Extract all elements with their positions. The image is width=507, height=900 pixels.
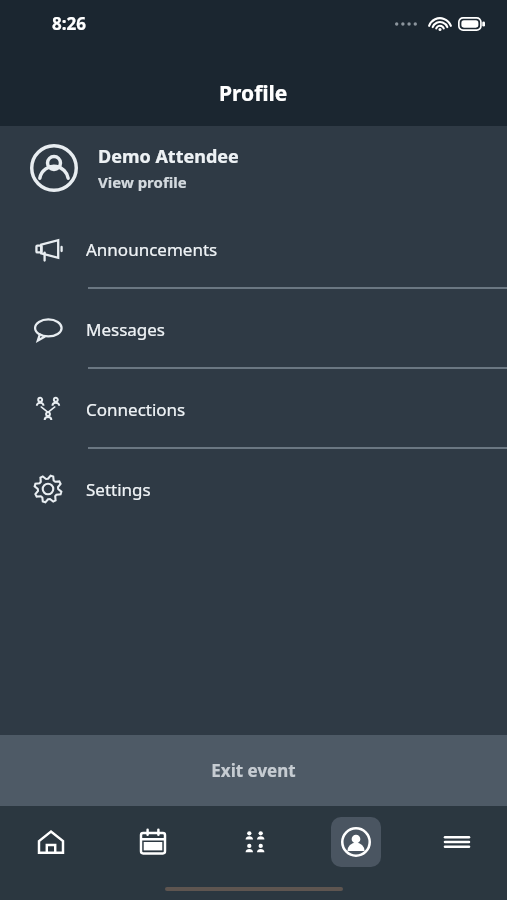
button[interactable]: Settings xyxy=(0,449,507,529)
staticText: Connections xyxy=(86,398,186,421)
button[interactable]: Profile xyxy=(305,806,406,878)
staticText: View profile xyxy=(98,172,187,192)
button[interactable]: People xyxy=(204,806,305,878)
button[interactable]: Announcements xyxy=(0,209,507,289)
staticText: Profile xyxy=(219,79,288,108)
staticText: Exit event xyxy=(211,759,296,782)
staticText: Announcements xyxy=(86,238,218,261)
button[interactable]: Home xyxy=(0,806,102,878)
button[interactable]: Agenda xyxy=(102,806,204,878)
button[interactable]: Connections xyxy=(0,369,507,449)
staticText: 8:26 xyxy=(52,12,86,35)
button[interactable]: Menu xyxy=(406,806,507,878)
staticText: Settings xyxy=(86,478,151,501)
button[interactable]: Messages xyxy=(0,289,507,369)
staticText: Messages xyxy=(86,318,166,341)
button[interactable]: Exit event xyxy=(0,735,507,806)
button[interactable]: Demo Attendee xyxy=(0,126,507,209)
staticText: Demo Attendee xyxy=(98,144,239,169)
